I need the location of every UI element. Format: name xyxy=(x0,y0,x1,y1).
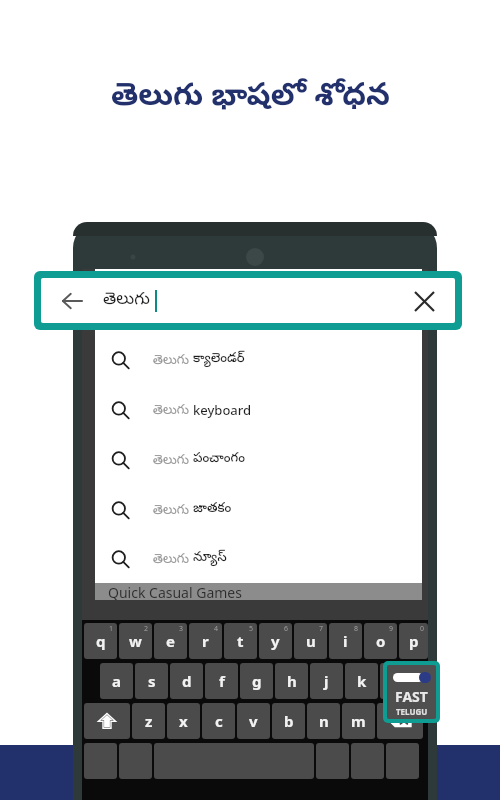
staticText: 9 xyxy=(389,624,394,634)
button[interactable] xyxy=(316,743,349,779)
staticText: తెలుగు xyxy=(153,350,193,370)
button[interactable]: g xyxy=(240,663,273,699)
staticText: తెలుగు xyxy=(153,400,193,420)
staticText: TELUGU xyxy=(396,706,428,717)
staticText: FAST xyxy=(395,687,428,706)
staticText: తెలుగు xyxy=(103,289,150,312)
staticText: l xyxy=(394,671,399,691)
staticText: keyboard xyxy=(193,401,252,419)
button[interactable]: తెలుగు xyxy=(95,485,422,535)
button[interactable]: j xyxy=(310,663,343,699)
staticText: v xyxy=(249,711,258,731)
button[interactable]: తెలుగు xyxy=(95,335,422,385)
staticText: జాతకం xyxy=(193,501,232,519)
button[interactable]: v xyxy=(237,703,270,739)
button[interactable]: r xyxy=(189,623,222,659)
button[interactable]: m xyxy=(342,703,375,739)
staticText: c xyxy=(215,711,223,731)
staticText: 3 xyxy=(179,624,184,634)
button[interactable]: d xyxy=(170,663,203,699)
button[interactable]: తెలుగు xyxy=(95,385,422,435)
button[interactable]: Shift xyxy=(84,703,130,739)
staticText: Quick Casual Games xyxy=(108,583,242,600)
staticText: m xyxy=(351,711,366,731)
button[interactable]: FAST xyxy=(387,665,436,719)
button[interactable]: p xyxy=(399,623,428,659)
button[interactable]: b xyxy=(272,703,305,739)
button[interactable]: f xyxy=(205,663,238,699)
staticText: j xyxy=(324,671,329,691)
button[interactable]: n xyxy=(307,703,340,739)
staticText: 0 xyxy=(420,624,425,634)
staticText: w xyxy=(129,631,142,651)
button[interactable]: x xyxy=(167,703,200,739)
button[interactable]: l xyxy=(380,663,413,699)
button[interactable]: o xyxy=(364,623,397,659)
staticText: a xyxy=(112,671,121,691)
staticText: 5 xyxy=(249,624,254,634)
button[interactable]: z xyxy=(132,703,165,739)
staticText: తెలుగు xyxy=(153,549,193,569)
staticText: క్యాలెండర్ xyxy=(193,351,245,369)
staticText: 7 xyxy=(319,624,324,634)
button[interactable]: c xyxy=(202,703,235,739)
button[interactable]: Clear xyxy=(407,284,441,318)
button[interactable]: e xyxy=(154,623,187,659)
staticText: i xyxy=(343,631,348,651)
staticText: 1 xyxy=(109,624,114,634)
button[interactable]: k xyxy=(345,663,378,699)
staticText: 2 xyxy=(144,624,149,634)
button[interactable] xyxy=(84,743,117,779)
staticText: r xyxy=(202,631,209,651)
button[interactable]: y xyxy=(259,623,292,659)
staticText: 8 xyxy=(354,624,359,634)
button[interactable]: Back xyxy=(57,286,87,316)
other: Shift xyxy=(97,711,117,731)
staticText: p xyxy=(409,631,419,651)
staticText: h xyxy=(287,671,297,691)
staticText: b xyxy=(284,711,294,731)
staticText: o xyxy=(376,631,386,651)
other: Backspace xyxy=(387,708,413,734)
button[interactable]: Backspace xyxy=(377,703,423,739)
staticText: u xyxy=(306,631,316,651)
button[interactable] xyxy=(119,743,152,779)
staticText: తెలుగు xyxy=(153,500,193,520)
staticText: తెలుగు భాషలో శోధన xyxy=(111,72,390,120)
staticText: తెలుగు xyxy=(153,450,193,470)
button[interactable]: h xyxy=(275,663,308,699)
staticText: q xyxy=(96,631,106,651)
staticText: k xyxy=(357,671,367,691)
button[interactable] xyxy=(351,743,384,779)
button[interactable]: s xyxy=(135,663,168,699)
button[interactable]: t xyxy=(224,623,257,659)
staticText: x xyxy=(179,711,188,731)
staticText: g xyxy=(252,671,262,691)
staticText: 4 xyxy=(214,624,219,634)
button[interactable]: i xyxy=(329,623,362,659)
staticText: d xyxy=(182,671,192,691)
button[interactable]: q xyxy=(84,623,117,659)
button[interactable]: Back xyxy=(41,278,455,323)
button[interactable]: w xyxy=(119,623,152,659)
staticText: e xyxy=(166,631,175,651)
button[interactable]: a xyxy=(100,663,133,699)
staticText: న్యూస్ xyxy=(193,550,227,568)
staticText: z xyxy=(145,711,153,731)
staticText: n xyxy=(319,711,329,731)
staticText: పంచాంగం xyxy=(193,451,246,469)
button[interactable]: తెలుగు xyxy=(95,435,422,485)
staticText: f xyxy=(219,671,225,691)
button[interactable]: u xyxy=(294,623,327,659)
staticText: 6 xyxy=(284,624,289,634)
staticText: s xyxy=(148,671,156,691)
button[interactable] xyxy=(386,743,419,779)
staticText: y xyxy=(271,631,280,651)
staticText: t xyxy=(237,631,244,651)
button[interactable]: తెలుగు xyxy=(95,535,422,583)
